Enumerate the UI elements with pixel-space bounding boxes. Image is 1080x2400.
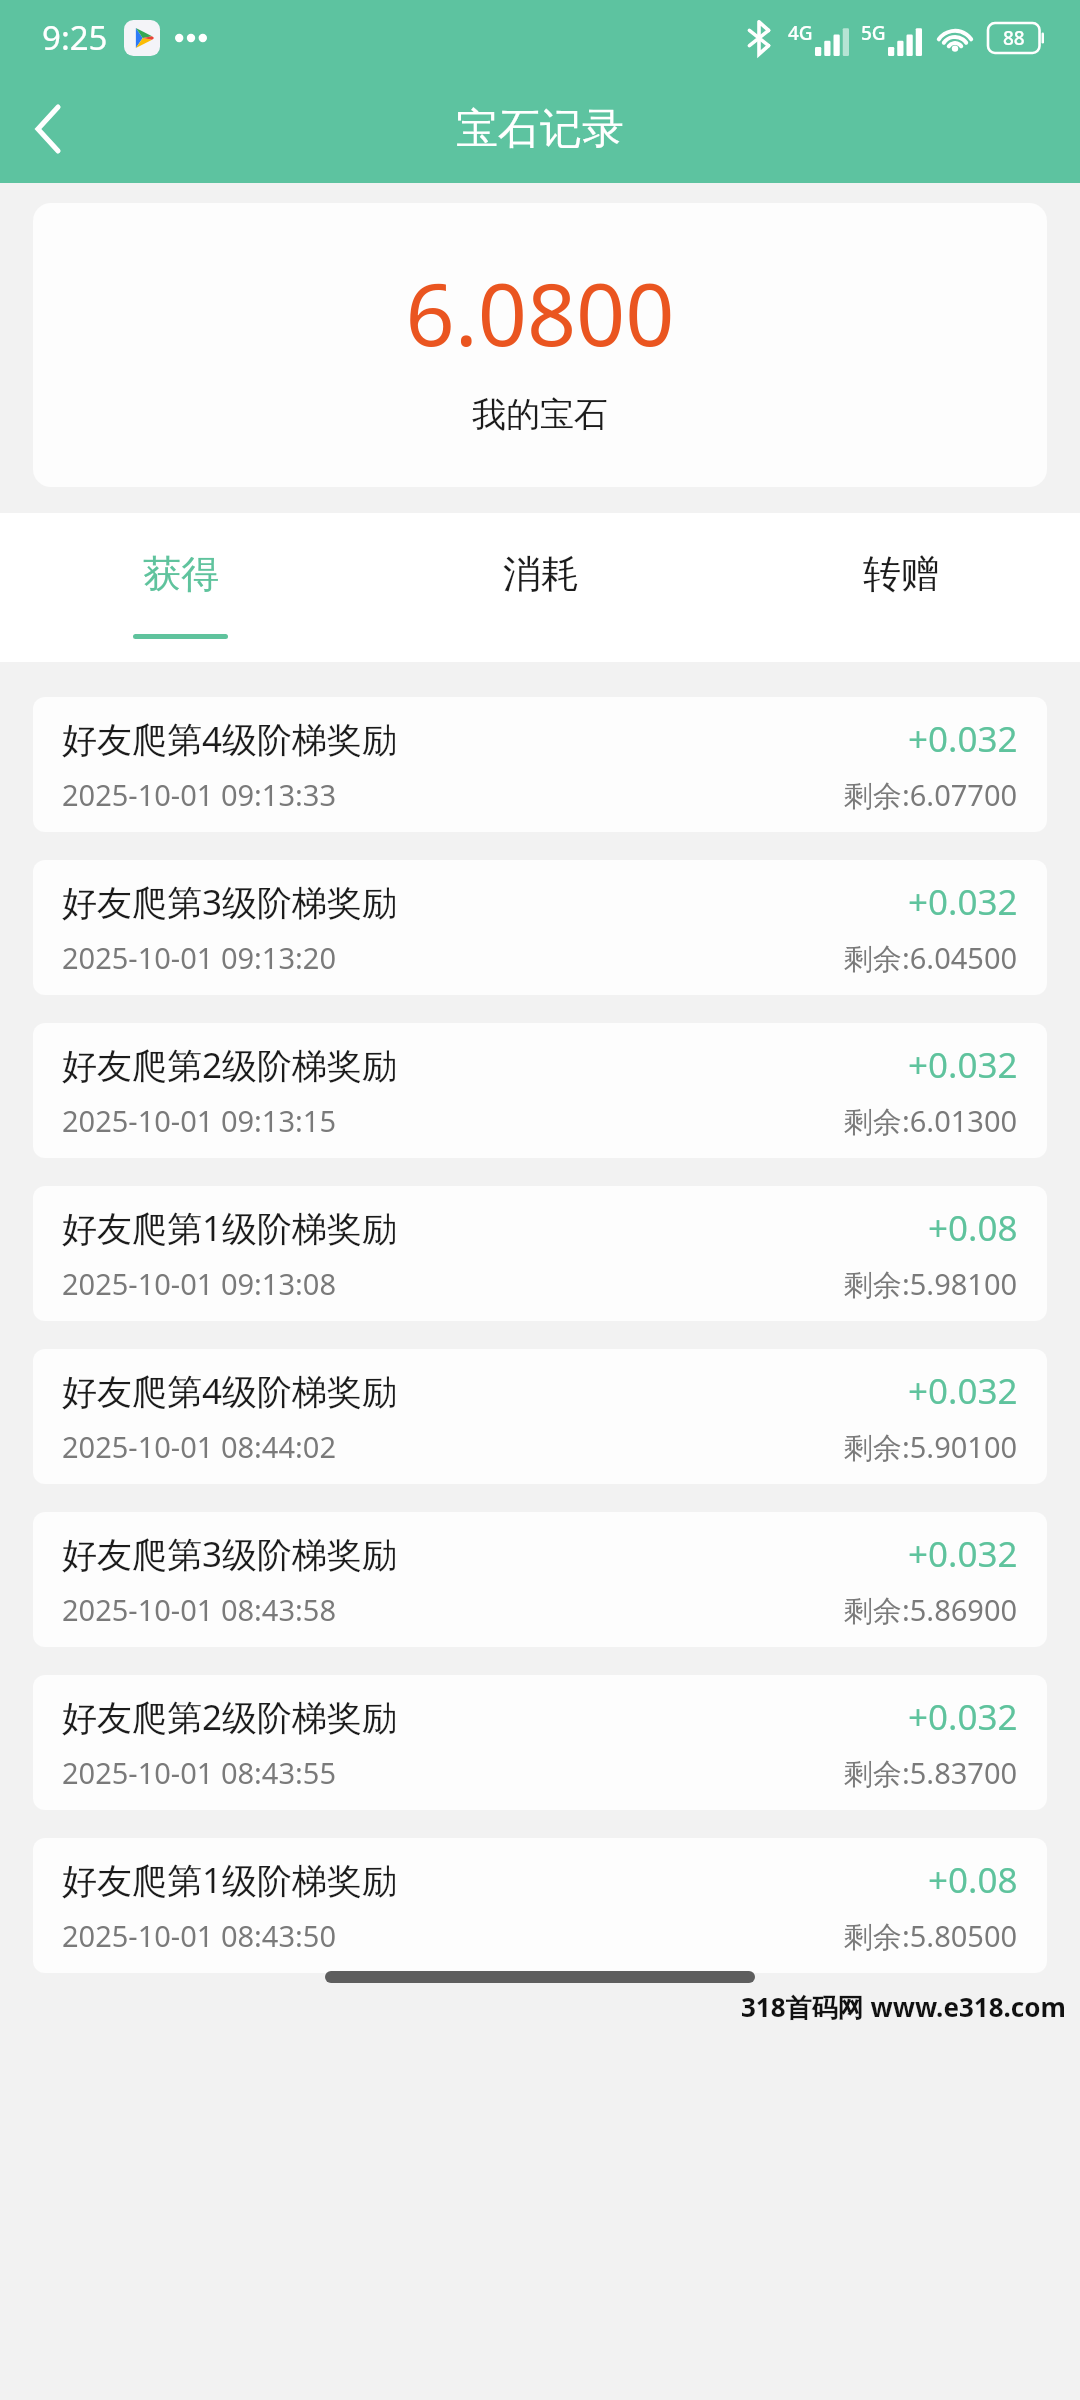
staticText: 剩余:5.90100 [844, 1427, 1018, 1467]
staticText: 88 [1003, 25, 1025, 51]
staticText: 剩余:6.07700 [844, 775, 1018, 815]
button[interactable]: 好友爬第2级阶梯奖励 [33, 1023, 1047, 1158]
button[interactable]: 好友爬第4级阶梯奖励 [33, 697, 1047, 832]
button[interactable]: 好友爬第1级阶梯奖励 [33, 1186, 1047, 1321]
button[interactable]: 转赠 [720, 513, 1080, 662]
staticText: 4G [788, 20, 813, 46]
staticText: 剩余:5.98100 [844, 1264, 1018, 1304]
button[interactable]: 6.0800 [33, 203, 1047, 487]
staticText: 剩余:5.80500 [844, 1916, 1018, 1956]
staticText: +0.032 [908, 1367, 1018, 1415]
staticText: +0.032 [908, 878, 1018, 926]
staticText: 2025-10-01 08:43:55 [62, 1753, 336, 1792]
staticText: 获得 [143, 550, 219, 598]
staticText: 2025-10-01 08:43:50 [62, 1916, 336, 1955]
staticText: 2025-10-01 08:44:02 [62, 1427, 336, 1466]
staticText: 我的宝石 [472, 393, 608, 436]
button[interactable]: 好友爬第3级阶梯奖励 [33, 1512, 1047, 1647]
staticText: 好友爬第2级阶梯奖励 [62, 1041, 398, 1089]
staticText: 好友爬第2级阶梯奖励 [62, 1693, 398, 1741]
staticText: 2025-10-01 09:13:20 [62, 938, 336, 977]
button[interactable]: 消耗 [360, 513, 720, 662]
staticText: 5G [861, 20, 886, 46]
staticText: 9:25 [42, 15, 108, 60]
staticText: 剩余:5.86900 [844, 1590, 1018, 1630]
staticText: +0.032 [908, 1041, 1018, 1089]
button[interactable]: 好友爬第3级阶梯奖励 [33, 860, 1047, 995]
staticText: 剩余:6.01300 [844, 1101, 1018, 1141]
staticText: 2025-10-01 09:13:08 [62, 1264, 336, 1303]
staticText: 好友爬第3级阶梯奖励 [62, 1530, 398, 1578]
staticText: +0.032 [908, 1693, 1018, 1741]
staticText: 剩余:6.04500 [844, 938, 1018, 978]
staticText: 2025-10-01 08:43:58 [62, 1590, 336, 1629]
button[interactable]: 好友爬第2级阶梯奖励 [33, 1675, 1047, 1810]
staticText: +0.08 [928, 1204, 1018, 1252]
staticText: 好友爬第3级阶梯奖励 [62, 878, 398, 926]
staticText: 好友爬第4级阶梯奖励 [62, 1367, 398, 1415]
staticText: +0.032 [908, 715, 1018, 763]
staticText: 2025-10-01 09:13:33 [62, 775, 336, 814]
staticText: +0.08 [928, 1856, 1018, 1904]
staticText: 剩余:5.83700 [844, 1753, 1018, 1793]
staticText: 宝石记录 [456, 103, 624, 156]
staticText: 好友爬第1级阶梯奖励 [62, 1856, 398, 1904]
staticText: 消耗 [503, 550, 579, 598]
button[interactable]: Back [0, 81, 96, 177]
staticText: 318首码网 www.e318.com [741, 1989, 1066, 2025]
staticText: 2025-10-01 09:13:15 [62, 1101, 336, 1140]
staticText: 好友爬第1级阶梯奖励 [62, 1204, 398, 1252]
staticText: 好友爬第4级阶梯奖励 [62, 715, 398, 763]
staticText: 转赠 [863, 550, 939, 598]
staticText: 6.0800 [405, 254, 675, 371]
button[interactable]: 获得 [0, 513, 360, 662]
button[interactable]: 好友爬第1级阶梯奖励 [33, 1838, 1047, 1973]
staticText: +0.032 [908, 1530, 1018, 1578]
button[interactable]: 好友爬第4级阶梯奖励 [33, 1349, 1047, 1484]
